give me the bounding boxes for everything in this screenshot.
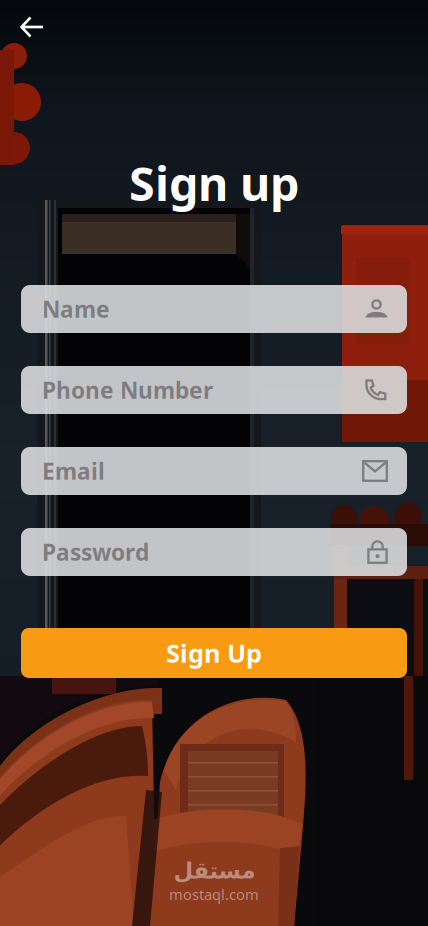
staticText: Sign up bbox=[129, 152, 299, 214]
button[interactable]: Phone Number bbox=[21, 366, 407, 414]
staticText: Email bbox=[42, 456, 105, 486]
staticText: مستقل bbox=[173, 858, 255, 883]
button[interactable]: Name bbox=[21, 285, 407, 333]
button[interactable]: Email bbox=[21, 447, 407, 495]
button[interactable]: Back bbox=[10, 6, 55, 48]
staticText: Password bbox=[42, 537, 149, 567]
staticText: mostaql.com bbox=[169, 884, 259, 904]
staticText: Phone Number bbox=[42, 375, 213, 405]
button[interactable]: Sign Up bbox=[21, 628, 407, 678]
staticText: Sign Up bbox=[166, 636, 262, 670]
button[interactable]: Password bbox=[21, 528, 407, 576]
staticText: Name bbox=[42, 294, 110, 324]
